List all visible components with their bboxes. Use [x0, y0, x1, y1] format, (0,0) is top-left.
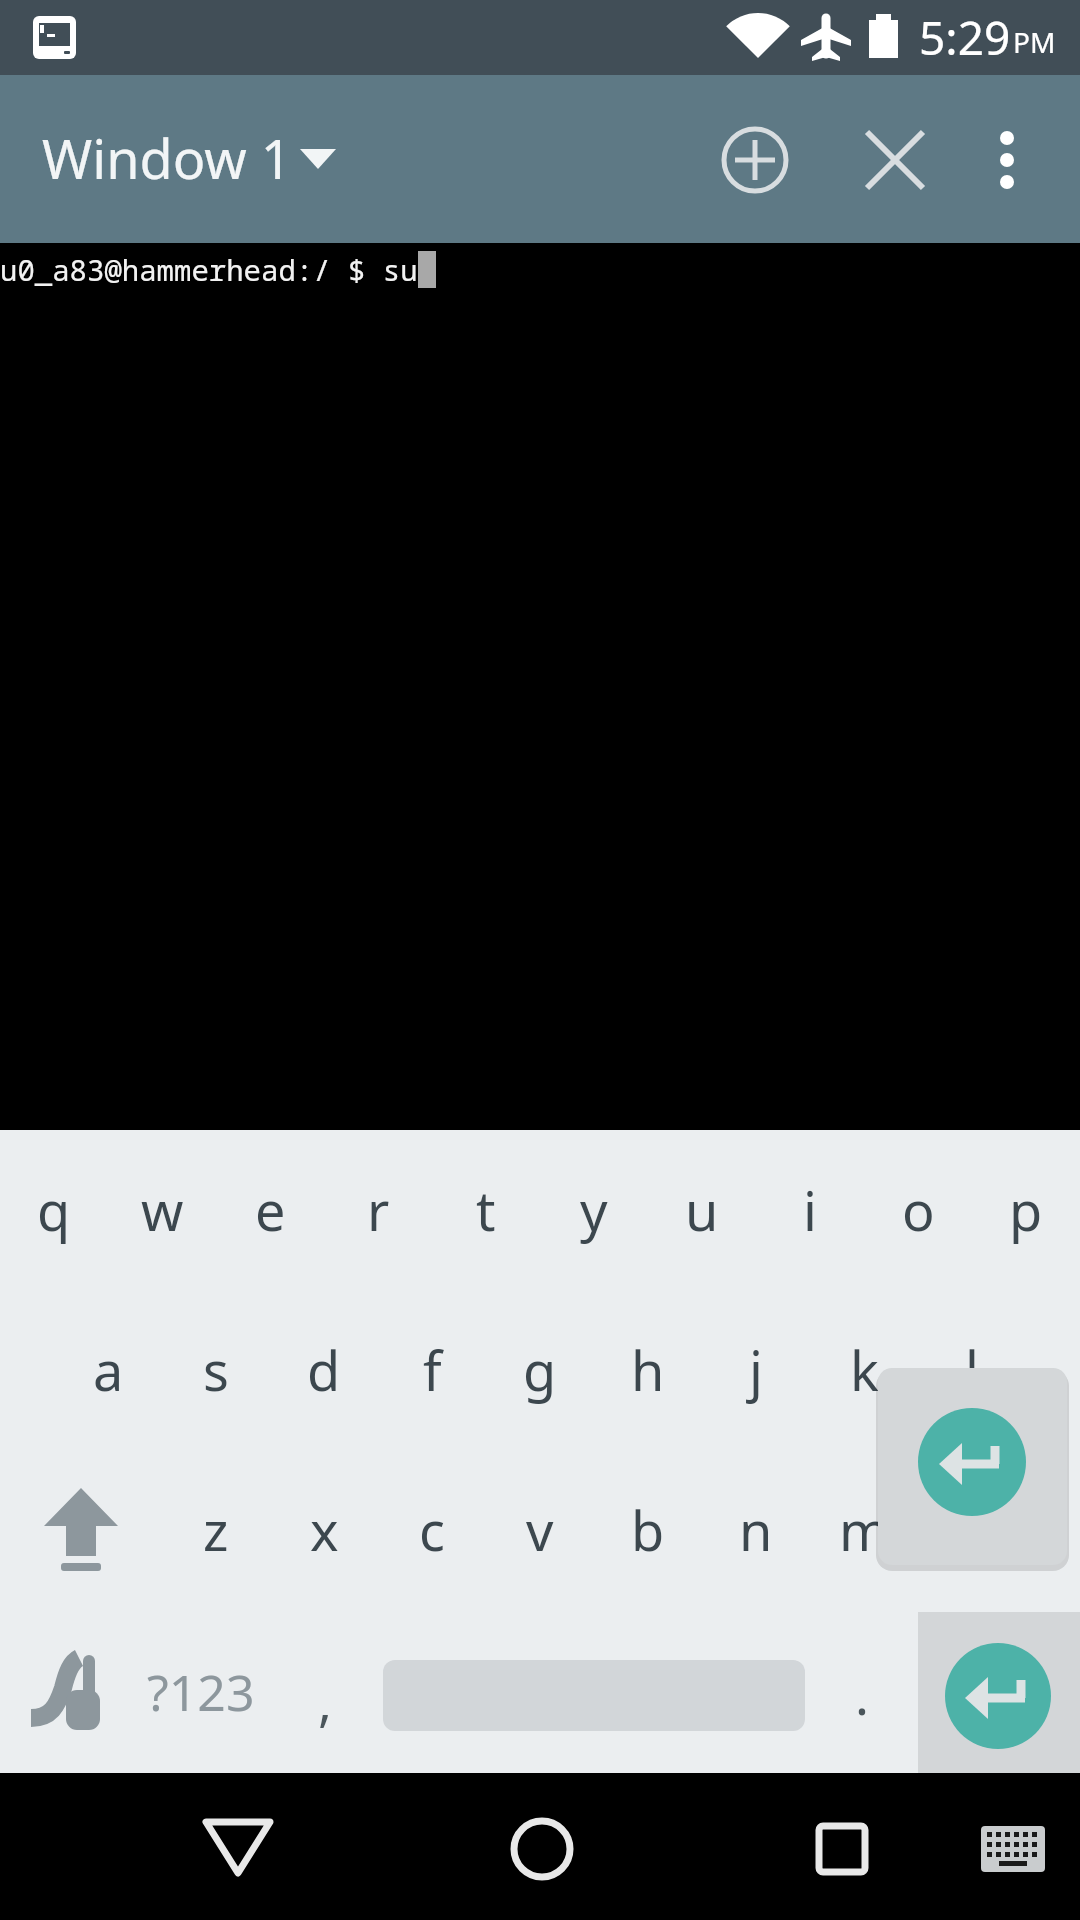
- button[interactable]: [178, 1787, 298, 1907]
- button[interactable]: w: [108, 1130, 216, 1290]
- button[interactable]: o: [864, 1130, 972, 1290]
- button[interactable]: p: [972, 1130, 1080, 1290]
- staticText: g: [523, 1333, 557, 1407]
- button[interactable]: b: [594, 1450, 702, 1610]
- button[interactable]: Window 1: [42, 118, 338, 198]
- button[interactable]: x: [270, 1450, 378, 1610]
- staticText: b: [631, 1493, 665, 1567]
- staticText: ,: [318, 1665, 332, 1736]
- button[interactable]: a: [54, 1290, 162, 1450]
- button[interactable]: s: [162, 1290, 270, 1450]
- staticText: m: [839, 1493, 890, 1567]
- button[interactable]: [845, 110, 945, 210]
- staticText: Window 1: [42, 121, 292, 195]
- button[interactable]: [27, 1450, 135, 1610]
- staticText: v: [526, 1493, 554, 1567]
- staticText: o: [902, 1173, 935, 1247]
- button[interactable]: f: [378, 1290, 486, 1450]
- staticText: j: [749, 1333, 763, 1407]
- button[interactable]: n: [702, 1450, 810, 1610]
- staticText: l: [965, 1333, 979, 1407]
- button[interactable]: m: [810, 1450, 918, 1610]
- staticText: z: [203, 1493, 229, 1567]
- staticText: q: [37, 1173, 71, 1247]
- staticText: e: [255, 1173, 286, 1247]
- button[interactable]: v: [486, 1450, 594, 1610]
- staticText: u: [685, 1173, 719, 1247]
- button[interactable]: j: [702, 1290, 810, 1450]
- button[interactable]: ?123: [147, 1612, 255, 1772]
- button[interactable]: c: [378, 1450, 486, 1610]
- button[interactable]: .: [808, 1614, 916, 1774]
- button[interactable]: q: [0, 1130, 108, 1290]
- button[interactable]: [705, 110, 805, 210]
- staticText: k: [850, 1333, 879, 1407]
- button[interactable]: h: [594, 1290, 702, 1450]
- button[interactable]: k: [810, 1290, 918, 1450]
- staticText: y: [580, 1173, 608, 1247]
- staticText: ?123: [147, 1658, 255, 1726]
- staticText: .: [855, 1659, 869, 1730]
- button[interactable]: [918, 1612, 1080, 1782]
- button[interactable]: [21, 1610, 129, 1770]
- staticText: r: [367, 1173, 390, 1247]
- button[interactable]: [965, 110, 1045, 210]
- button[interactable]: e: [216, 1130, 324, 1290]
- button[interactable]: [482, 1787, 602, 1907]
- button[interactable]: [782, 1787, 902, 1907]
- staticText: t: [476, 1173, 496, 1247]
- staticText: i: [803, 1173, 817, 1247]
- button[interactable]: u: [648, 1130, 756, 1290]
- button[interactable]: ,: [271, 1620, 379, 1780]
- button[interactable]: [953, 1787, 1073, 1907]
- staticText: p: [1009, 1173, 1043, 1247]
- staticText: d: [307, 1333, 341, 1407]
- staticText: PM: [1013, 23, 1056, 61]
- staticText: u0_a83@hammerhead:/ $ su: [0, 250, 418, 289]
- staticText: w: [141, 1173, 184, 1247]
- button[interactable]: y: [540, 1130, 648, 1290]
- button[interactable]: d: [270, 1290, 378, 1450]
- button[interactable]: r: [324, 1130, 432, 1290]
- staticText: a: [93, 1333, 124, 1407]
- button[interactable]: i: [756, 1130, 864, 1290]
- staticText: x: [310, 1493, 339, 1567]
- button[interactable]: g: [486, 1290, 594, 1450]
- staticText: h: [631, 1333, 665, 1407]
- button[interactable]: l: [918, 1290, 1026, 1450]
- staticText: 5:29: [919, 6, 1011, 69]
- staticText: n: [739, 1493, 773, 1567]
- button[interactable]: z: [162, 1450, 270, 1610]
- staticText: s: [203, 1333, 229, 1407]
- staticText: f: [423, 1333, 442, 1407]
- staticText: c: [419, 1493, 445, 1567]
- button[interactable]: t: [432, 1130, 540, 1290]
